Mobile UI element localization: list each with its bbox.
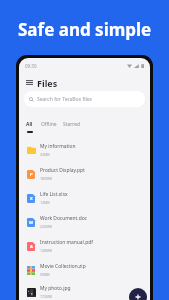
staticText: 32MB [40,152,50,157]
staticText: Safe and simple [18,18,152,41]
staticText: Search for TeraBox files [37,96,92,103]
button[interactable]: All [25,121,34,133]
staticText: Life List.xlsx [40,191,68,198]
staticText: Work Document.doc [40,215,87,222]
button[interactable]: Add [129,288,147,300]
button[interactable]: P [19,162,150,186]
button[interactable]: Starred [62,121,81,131]
staticText: Offline [41,121,57,128]
staticText: X [30,196,33,202]
staticText: Starred [63,121,80,128]
staticText: Product Display.ppt [40,167,85,174]
staticText: 128MB [40,248,52,253]
staticText: Instruction manual.pdf [40,239,93,246]
button[interactable]: My information [19,138,150,162]
staticText: All [26,121,33,128]
staticText: My photo.jpg [40,285,71,292]
button[interactable]: X [19,186,150,210]
button[interactable]: My photo.jpg [19,282,150,300]
staticText: 180MB [40,176,52,181]
staticText: 220MB [40,224,52,229]
staticText: A [30,244,33,250]
staticText: P [30,172,33,178]
staticText: 12MB [40,200,50,205]
staticText: 09:30 [25,63,37,69]
button[interactable]: Menu [25,77,34,87]
button[interactable]: Movie Collection.zip [19,258,150,282]
staticText: W [29,220,34,226]
button[interactable]: Search for TeraBox files [24,91,145,107]
button[interactable]: Offline [40,121,58,131]
staticText: 172MB [40,294,52,299]
staticText: Movie Collection.zip [40,263,86,270]
button[interactable]: A [19,234,150,258]
staticText: 50MB [40,272,50,277]
button[interactable]: W [19,210,150,234]
staticText: My information [40,143,76,150]
staticText: Files [37,77,58,87]
